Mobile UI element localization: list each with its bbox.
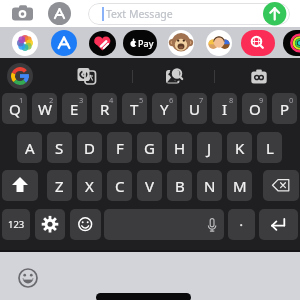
- button[interactable]: Z: [47, 170, 72, 201]
- button[interactable]: [18, 268, 38, 288]
- staticText: M: [233, 176, 247, 196]
- staticText: W: [38, 99, 52, 119]
- button[interactable]: [263, 170, 299, 201]
- staticText: T: [130, 99, 139, 119]
- button[interactable]: [104, 209, 224, 240]
- button[interactable]: [247, 66, 269, 86]
- button[interactable]: [48, 2, 71, 25]
- button[interactable]: [88, 3, 290, 25]
- button[interactable]: W: [32, 93, 57, 124]
- staticText: Z: [55, 176, 64, 196]
- staticText: D: [84, 138, 95, 158]
- staticText: H: [174, 138, 186, 158]
- staticText: 123: [8, 218, 25, 231]
- staticText: 9: [259, 95, 264, 105]
- button[interactable]: [283, 30, 300, 56]
- button[interactable]: E: [62, 93, 87, 124]
- button[interactable]: S: [47, 132, 72, 163]
- staticText: P: [280, 99, 290, 119]
- staticText: Pay: [138, 37, 154, 49]
- staticText: 7: [199, 95, 204, 105]
- staticText: E: [70, 99, 79, 119]
- staticText: F: [116, 138, 124, 158]
- button[interactable]: M: [227, 170, 252, 201]
- button[interactable]: Y: [152, 93, 177, 124]
- staticText: R: [100, 99, 110, 119]
- button[interactable]: C: [107, 170, 132, 201]
- staticText: N: [204, 176, 216, 196]
- button[interactable]: D: [77, 132, 102, 163]
- button[interactable]: [165, 67, 185, 87]
- button[interactable]: O: [242, 93, 267, 124]
- button[interactable]: K: [227, 132, 252, 163]
- button[interactable]: [168, 30, 194, 56]
- button[interactable]: J: [197, 132, 222, 163]
- button[interactable]: 123: [2, 209, 30, 240]
- button[interactable]: [7, 63, 33, 89]
- staticText: I: [222, 99, 228, 119]
- button[interactable]: [89, 31, 116, 56]
- button[interactable]: [2, 170, 38, 201]
- button[interactable]: [263, 2, 287, 26]
- button[interactable]: P: [272, 93, 297, 124]
- button[interactable]: L: [257, 132, 282, 163]
- button[interactable]: Q: [2, 93, 27, 124]
- staticText: X: [85, 176, 94, 196]
- staticText: Y: [160, 99, 169, 119]
- staticText: O: [249, 99, 261, 119]
- button[interactable]: [241, 30, 275, 56]
- button[interactable]: Pay: [123, 30, 157, 56]
- button[interactable]: T: [122, 93, 147, 124]
- button[interactable]: R: [92, 93, 117, 124]
- button[interactable]: [259, 209, 298, 240]
- staticText: U: [189, 99, 200, 119]
- button[interactable]: A: [17, 132, 42, 163]
- button[interactable]: [206, 30, 232, 56]
- button[interactable]: I: [212, 93, 237, 124]
- staticText: 4: [109, 95, 114, 105]
- staticText: V: [145, 176, 155, 196]
- staticText: 2: [49, 95, 54, 105]
- button[interactable]: F: [107, 132, 132, 163]
- staticText: B: [175, 176, 185, 196]
- staticText: Text Message: [106, 7, 173, 21]
- staticText: C: [115, 176, 125, 196]
- staticText: K: [235, 138, 245, 158]
- staticText: G: [144, 138, 155, 158]
- button[interactable]: [10, 4, 36, 24]
- staticText: A: [25, 138, 35, 158]
- staticText: Q: [9, 99, 21, 119]
- button[interactable]: [51, 30, 77, 56]
- button[interactable]: V: [137, 170, 162, 201]
- button[interactable]: [228, 209, 255, 240]
- staticText: 0: [289, 95, 294, 105]
- button[interactable]: N: [197, 170, 222, 201]
- staticText: 1: [19, 95, 24, 105]
- button[interactable]: [70, 209, 101, 240]
- staticText: 5: [139, 95, 144, 105]
- staticText: J: [207, 138, 212, 158]
- button[interactable]: U: [182, 93, 207, 124]
- staticText: L: [266, 138, 274, 158]
- button[interactable]: B: [167, 170, 192, 201]
- button[interactable]: [75, 65, 97, 87]
- button[interactable]: [35, 209, 65, 240]
- staticText: 8: [229, 95, 234, 105]
- button[interactable]: X: [77, 170, 102, 201]
- staticText: 6: [169, 95, 174, 105]
- staticText: S: [55, 138, 64, 158]
- staticText: 3: [79, 95, 84, 105]
- button[interactable]: G: [137, 132, 162, 163]
- button[interactable]: [12, 30, 38, 56]
- button[interactable]: H: [167, 132, 192, 163]
